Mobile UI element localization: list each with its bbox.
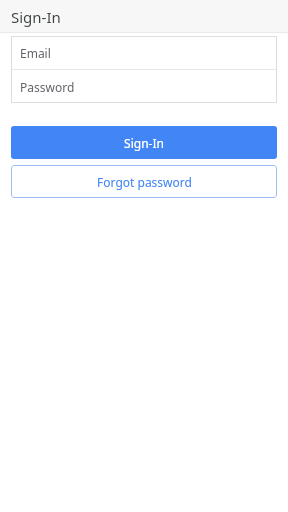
- staticText: Email: [20, 45, 51, 61]
- staticText: Forgot password: [97, 174, 192, 190]
- staticText: Password: [20, 79, 75, 95]
- staticText: Sign-In: [11, 7, 61, 27]
- button[interactable]: Email: [11, 36, 277, 69]
- staticText: Sign-In: [124, 135, 164, 151]
- button[interactable]: Sign-In: [11, 126, 277, 159]
- button[interactable]: Password: [11, 70, 277, 103]
- button[interactable]: Forgot password: [11, 165, 277, 198]
